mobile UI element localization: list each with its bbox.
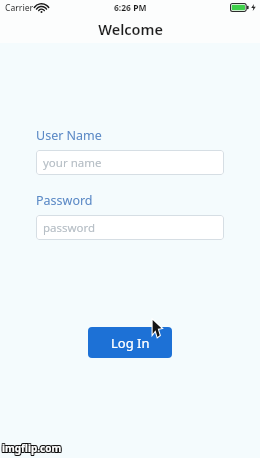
staticText: Welcome bbox=[98, 19, 163, 39]
staticText: your name bbox=[43, 155, 102, 171]
other: Charging bbox=[251, 4, 256, 11]
staticText: imgflip.com bbox=[3, 440, 63, 454]
staticText: User Name bbox=[36, 127, 102, 144]
staticText: imgflip.com bbox=[3, 442, 63, 456]
staticText: Log In bbox=[111, 334, 150, 352]
staticText: imgflip.com bbox=[1, 440, 61, 454]
staticText: imgflip.com bbox=[2, 442, 62, 456]
staticText: imgflip.com bbox=[3, 441, 63, 455]
staticText: Carrier bbox=[5, 2, 34, 14]
other: Battery full bbox=[230, 3, 249, 12]
staticText: Password bbox=[36, 192, 93, 209]
staticText: 6:26 PM bbox=[114, 2, 147, 14]
button[interactable]: your name bbox=[36, 150, 224, 175]
staticText: imgflip.com bbox=[2, 440, 62, 454]
staticText: imgflip.com bbox=[2, 441, 62, 455]
staticText: password bbox=[43, 220, 96, 236]
staticText: imgflip.com bbox=[1, 442, 61, 456]
button[interactable]: password bbox=[36, 215, 224, 240]
staticText: imgflip.com bbox=[1, 441, 61, 455]
button[interactable]: Log In bbox=[88, 327, 172, 358]
other: Wi-Fi bbox=[37, 4, 46, 13]
